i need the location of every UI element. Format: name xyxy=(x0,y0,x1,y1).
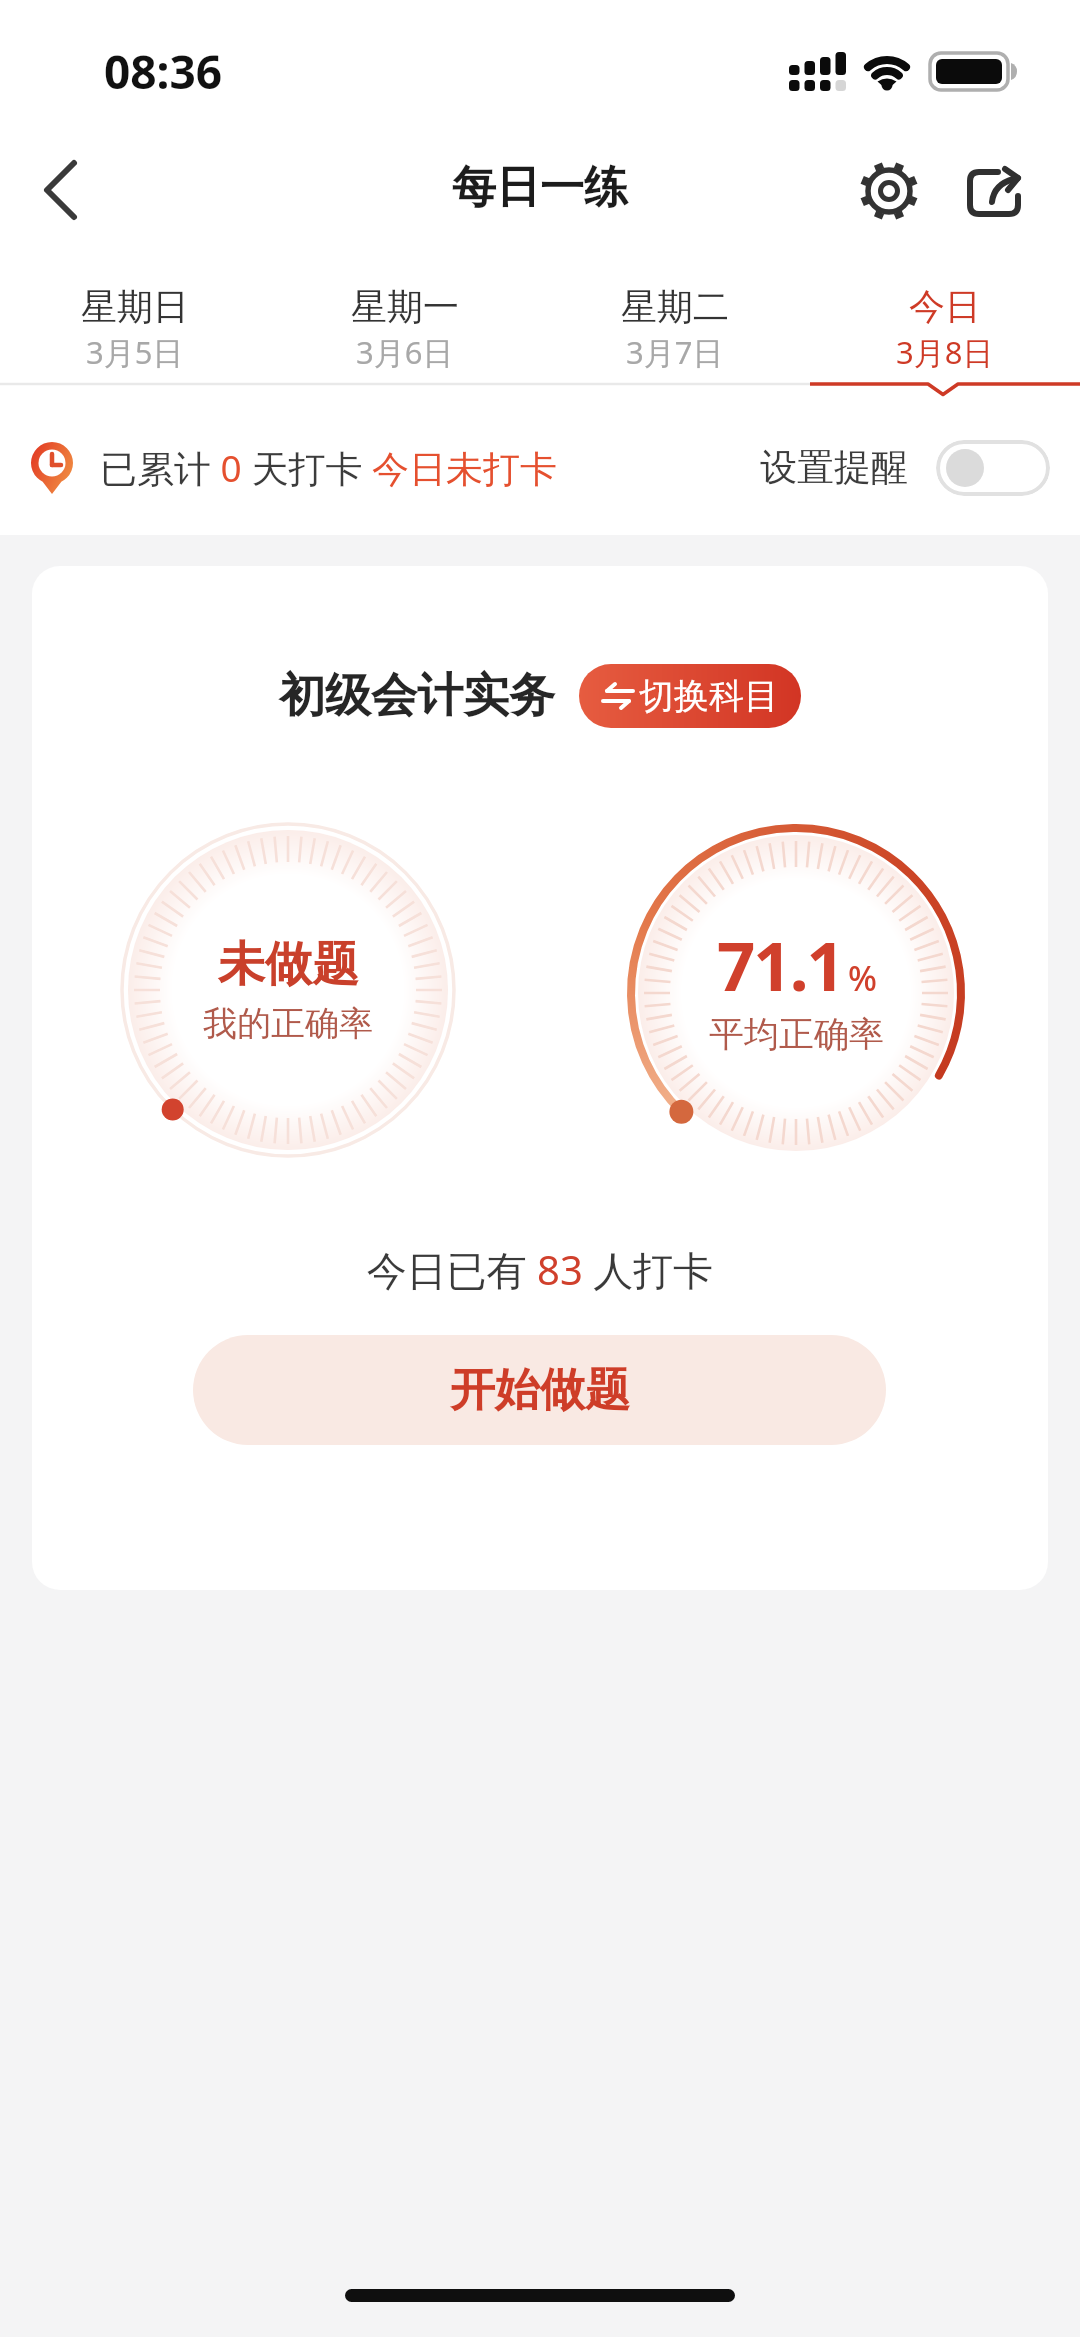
staticText: 星期二 xyxy=(621,284,729,329)
staticText: 每日一练 xyxy=(0,160,1080,215)
staticText: 3月7日 xyxy=(626,331,724,373)
staticText: 平均正确率 xyxy=(709,1012,884,1056)
button[interactable] xyxy=(856,158,920,222)
button[interactable] xyxy=(962,158,1026,222)
staticText: 71.1 xyxy=(717,919,843,1010)
staticText: 今日 xyxy=(909,284,981,329)
button[interactable]: 星期一 xyxy=(270,284,540,394)
button[interactable]: 星期二 xyxy=(540,284,810,394)
staticText: 已累计 0 天打卡 今日未打卡 xyxy=(100,442,558,493)
staticText: 3月6日 xyxy=(356,331,454,373)
button[interactable] xyxy=(936,440,1050,496)
staticText: 初级会计实务 xyxy=(279,667,555,725)
button[interactable] xyxy=(28,158,92,222)
button[interactable]: 今日 xyxy=(810,284,1080,394)
button[interactable]: 切换科目 xyxy=(579,664,801,728)
staticText: 08:36 xyxy=(104,40,223,103)
staticText: 开始做题 xyxy=(450,1362,630,1419)
staticText: 星期日 xyxy=(81,284,189,329)
staticText: 星期一 xyxy=(351,284,459,329)
staticText: 今日已有 83 人打卡 xyxy=(32,1242,1048,1297)
staticText: % xyxy=(848,955,877,1001)
staticText: 3月8日 xyxy=(896,331,994,373)
button[interactable]: 开始做题 xyxy=(193,1335,886,1445)
staticText: 设置提醒 xyxy=(760,444,908,491)
staticText: 未做题 xyxy=(218,935,359,994)
staticText: 切换科目 xyxy=(639,674,779,718)
staticText: 我的正确率 xyxy=(203,1002,373,1045)
button[interactable]: 星期日 xyxy=(0,284,270,394)
staticText: 3月5日 xyxy=(86,331,184,373)
button[interactable]: 已累计 0 天打卡 今日未打卡 xyxy=(0,400,1080,535)
